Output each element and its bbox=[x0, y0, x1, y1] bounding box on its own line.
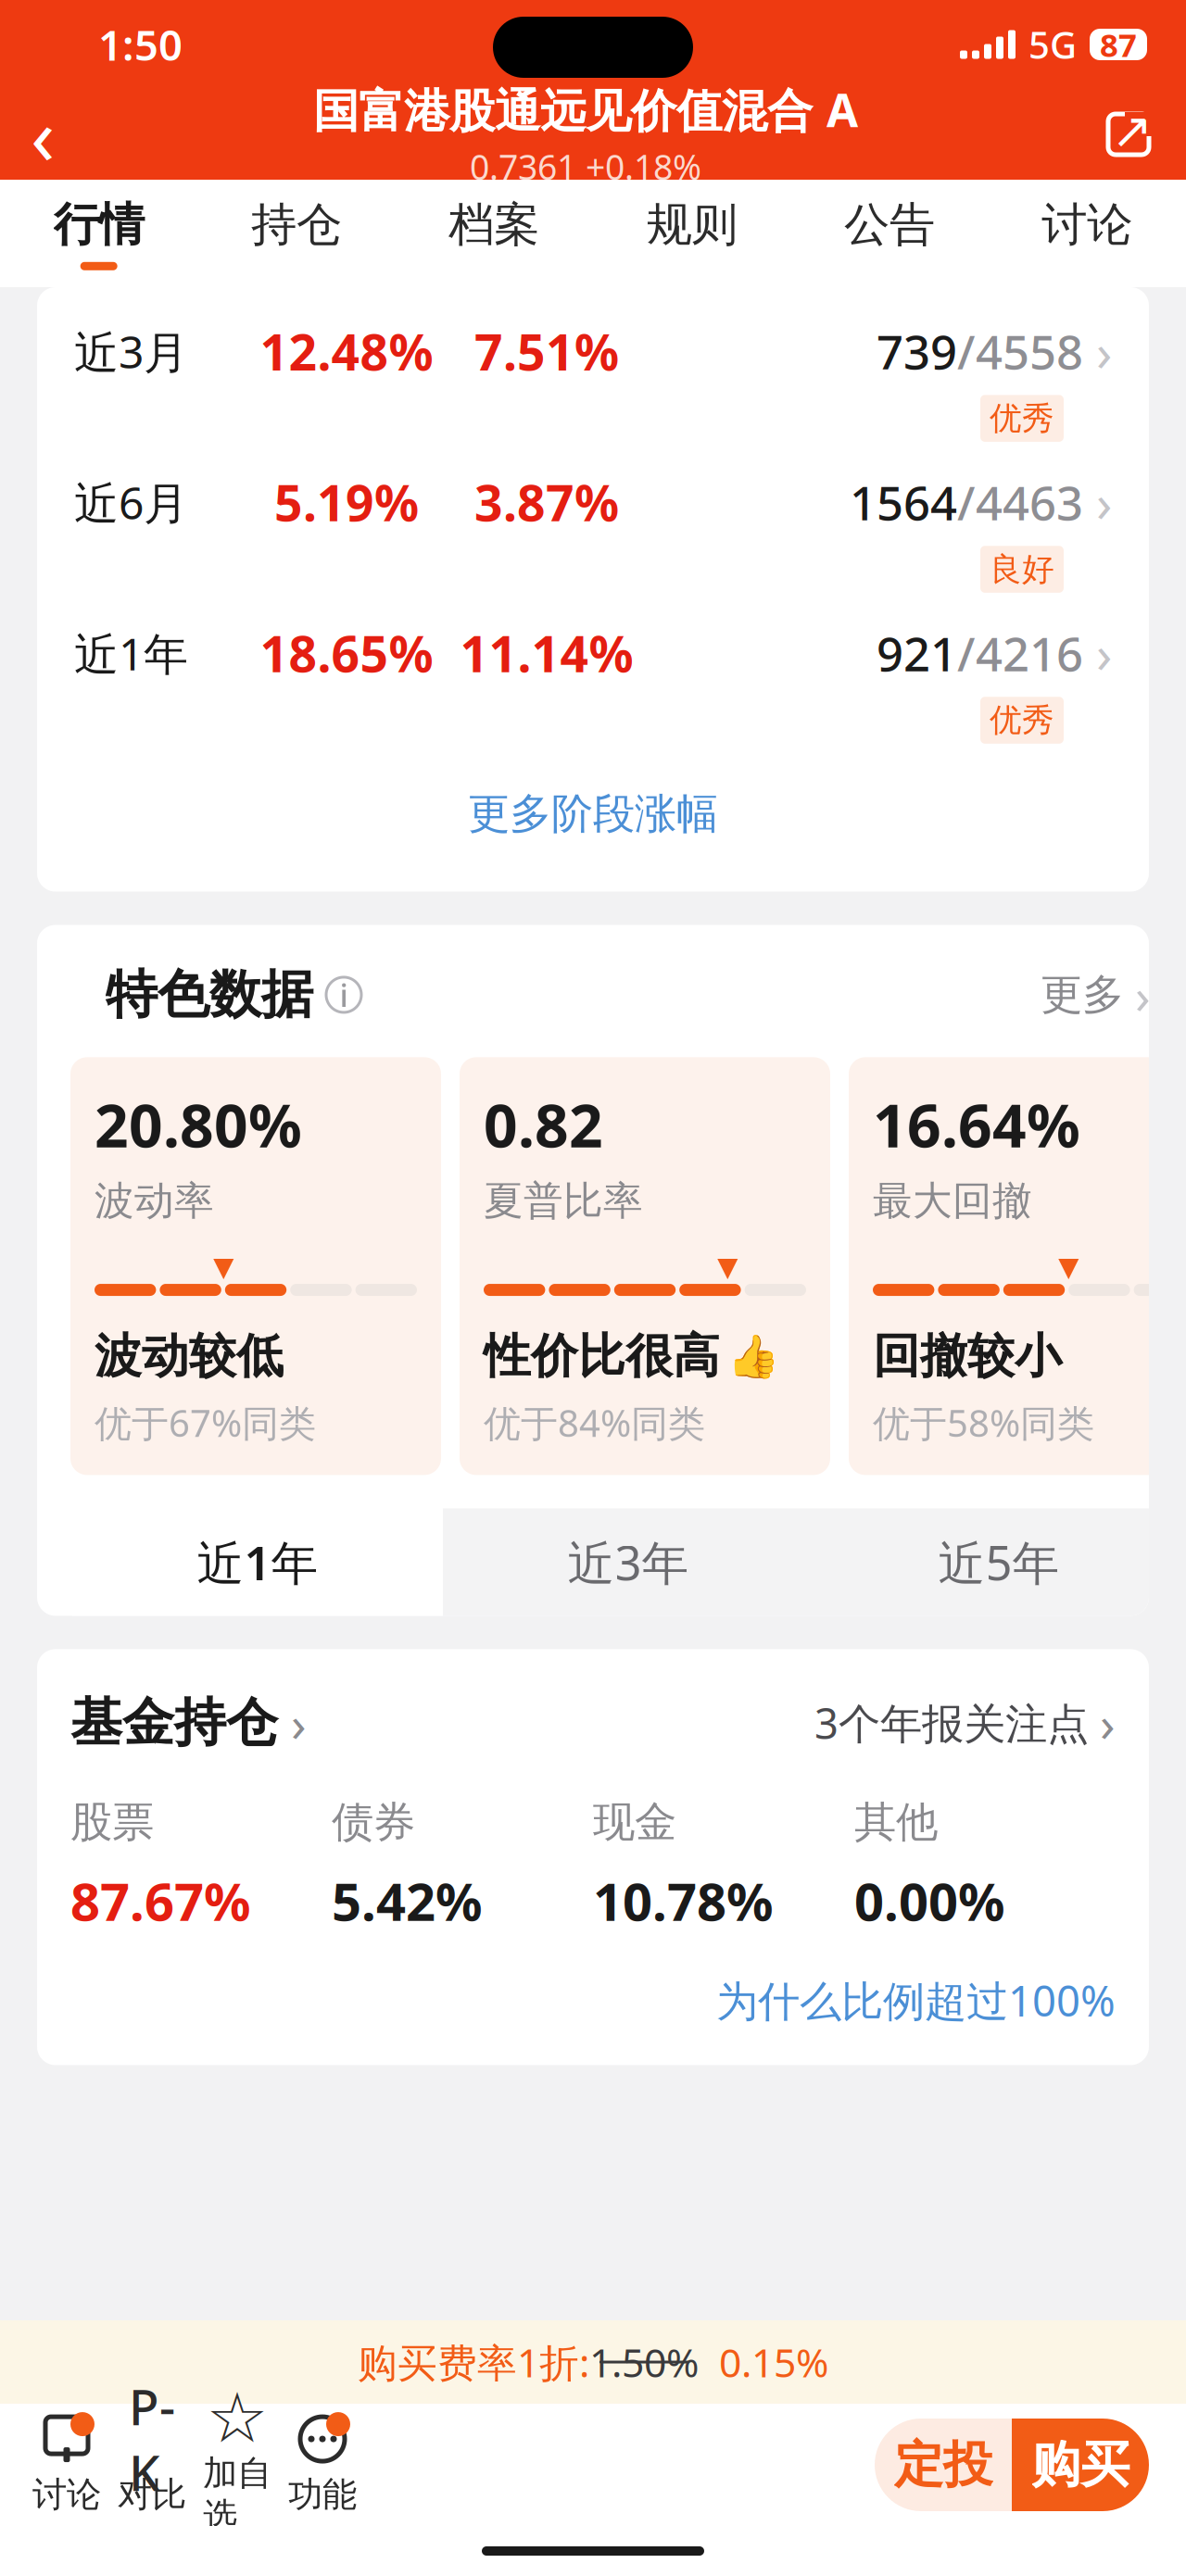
staticText: 5.42% bbox=[332, 1866, 483, 1935]
button[interactable]: 更多 bbox=[1041, 962, 1151, 1028]
staticText: 3个年报关注点 bbox=[814, 1695, 1089, 1751]
staticText: 规则 bbox=[646, 197, 737, 253]
staticText: 18.65% bbox=[260, 620, 433, 686]
staticText: 购买费率1折: bbox=[358, 2336, 589, 2388]
staticText: PK bbox=[129, 2373, 175, 2504]
staticText: 性价比很高 bbox=[484, 1327, 720, 1385]
button[interactable]: 近3年 bbox=[443, 1508, 814, 1616]
staticText: 5.19% bbox=[274, 469, 419, 535]
staticText: 20.80% bbox=[95, 1085, 302, 1164]
staticText: 讨论 bbox=[1042, 197, 1133, 253]
button[interactable]: 规则 bbox=[593, 180, 791, 287]
button[interactable]: 更多阶段涨幅 bbox=[37, 757, 1149, 871]
button[interactable]: 近1年 bbox=[72, 1508, 443, 1616]
staticText: › bbox=[1135, 962, 1151, 1028]
button[interactable]: 近6月 bbox=[37, 455, 1149, 606]
staticText: 16.64% bbox=[873, 1085, 1080, 1164]
staticText: 特色数据 bbox=[106, 963, 313, 1027]
staticText: 优于84%同类 bbox=[484, 1398, 705, 1447]
button[interactable]: Share bbox=[1086, 92, 1171, 177]
staticText: 更多阶段涨幅 bbox=[468, 788, 718, 840]
staticText: 0.82 bbox=[484, 1085, 603, 1164]
staticText: 优于67%同类 bbox=[95, 1398, 316, 1447]
staticText: ☆ bbox=[206, 2379, 268, 2457]
staticText: 持仓 bbox=[251, 197, 342, 253]
staticText: 公告 bbox=[844, 197, 935, 253]
staticText: 5G bbox=[1028, 20, 1077, 69]
staticText: 0.15% bbox=[699, 2336, 828, 2388]
staticText: 0.00% bbox=[854, 1866, 1005, 1935]
button[interactable]: 定投 bbox=[875, 2419, 1012, 2511]
button[interactable]: 讨论 bbox=[988, 180, 1186, 287]
button[interactable]: 持仓 bbox=[198, 180, 395, 287]
button[interactable]: 公告 bbox=[791, 180, 988, 287]
staticText: 近6月 bbox=[74, 473, 188, 532]
staticText: 87.67% bbox=[70, 1866, 251, 1935]
staticText: 波动较低 bbox=[95, 1327, 284, 1385]
staticText: /4558 bbox=[957, 320, 1083, 382]
staticText: 优秀 bbox=[990, 399, 1054, 438]
staticText: 行情 bbox=[53, 197, 144, 253]
button[interactable]: 近1年 bbox=[37, 606, 1149, 757]
staticText: 739 bbox=[877, 320, 957, 382]
staticText: 7.51% bbox=[474, 318, 619, 384]
button[interactable]: PK bbox=[109, 2414, 195, 2516]
staticText: 1.50% bbox=[589, 2336, 699, 2388]
staticText: 讨论 bbox=[32, 2473, 101, 2516]
staticText: 定投 bbox=[894, 2434, 992, 2495]
staticText: 1564 bbox=[850, 471, 957, 533]
staticText: 为什么比例超过100% bbox=[716, 1972, 1116, 2028]
staticText: 0.7361 +0.18% bbox=[470, 144, 701, 190]
staticText: 优秀 bbox=[990, 701, 1054, 740]
staticText: 1:50 bbox=[98, 17, 183, 72]
staticText: › bbox=[1096, 468, 1112, 537]
staticText: 档案 bbox=[449, 197, 540, 253]
staticText: 近1年 bbox=[74, 624, 188, 683]
button[interactable]: Back bbox=[0, 92, 85, 177]
button[interactable]: 近5年 bbox=[814, 1508, 1184, 1616]
staticText: 12.48% bbox=[260, 318, 433, 384]
staticText: 11.14% bbox=[460, 620, 633, 686]
staticText: 最大回撤 bbox=[873, 1177, 1032, 1225]
staticText: 债券 bbox=[332, 1796, 415, 1848]
staticText: 对比 bbox=[118, 2473, 186, 2516]
staticText: › bbox=[1100, 1690, 1116, 1755]
staticText: 现金 bbox=[593, 1796, 676, 1848]
staticText: 回撤较小 bbox=[873, 1327, 1062, 1385]
button[interactable]: 为什么比例超过100% bbox=[716, 1972, 1116, 2028]
button[interactable]: 基金持仓 bbox=[70, 1690, 307, 1755]
button[interactable]: 讨论 bbox=[24, 2414, 109, 2516]
staticText: 夏普比率 bbox=[484, 1177, 643, 1225]
staticText: 近3年 bbox=[568, 1531, 689, 1593]
staticText: 购买 bbox=[1031, 2434, 1129, 2495]
staticText: 近5年 bbox=[938, 1531, 1060, 1593]
button[interactable]: 购买费率1折: bbox=[0, 2320, 1186, 2404]
staticText: 优于58%同类 bbox=[873, 1398, 1094, 1447]
staticText: 87 bbox=[1100, 23, 1137, 66]
staticText: 近1年 bbox=[197, 1531, 318, 1593]
staticText: i bbox=[340, 973, 348, 1016]
staticText: 更多 bbox=[1041, 969, 1124, 1021]
button[interactable]: 近3月 bbox=[37, 304, 1149, 455]
staticText: ▼ bbox=[1058, 1251, 1079, 1282]
staticText: /4216 bbox=[957, 622, 1083, 684]
staticText: › bbox=[1096, 317, 1112, 386]
staticText: 3.87% bbox=[474, 469, 619, 535]
button[interactable]: 3个年报关注点 bbox=[814, 1690, 1116, 1755]
staticText: ▼ bbox=[717, 1251, 738, 1282]
button[interactable]: 购买 bbox=[1012, 2419, 1149, 2511]
staticText: 👍 bbox=[727, 1332, 779, 1380]
button[interactable]: 功能 bbox=[280, 2414, 365, 2516]
staticText: 良好 bbox=[990, 550, 1054, 589]
staticText: 10.78% bbox=[593, 1866, 774, 1935]
button[interactable]: Info bbox=[326, 977, 361, 1012]
button[interactable]: ☆ bbox=[195, 2393, 280, 2537]
button[interactable]: 行情 bbox=[0, 180, 198, 287]
staticText: › bbox=[291, 1690, 307, 1755]
staticText: 其他 bbox=[854, 1796, 938, 1848]
staticText: › bbox=[1096, 619, 1112, 688]
staticText: 国富港股通远见价值混合 A bbox=[313, 79, 858, 140]
staticText: /4463 bbox=[957, 471, 1083, 533]
staticText: ↗ bbox=[1111, 103, 1153, 159]
button[interactable]: 档案 bbox=[395, 180, 593, 287]
